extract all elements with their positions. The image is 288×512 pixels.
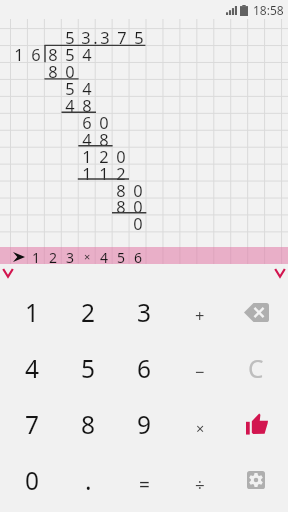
button[interactable]: 2 xyxy=(60,284,116,340)
staticText: . xyxy=(85,464,92,497)
button[interactable]: = xyxy=(116,452,172,508)
staticText: 3 xyxy=(66,248,75,265)
staticText: 1 xyxy=(82,145,92,167)
staticText: 7 xyxy=(117,26,127,48)
other: Backspace xyxy=(244,303,269,322)
staticText: 0 xyxy=(133,179,143,201)
staticText: ÷ xyxy=(195,473,205,496)
staticText: 8 xyxy=(99,128,109,150)
staticText: 5 xyxy=(65,77,75,99)
other: Collapse right xyxy=(274,269,286,278)
other: Cursor xyxy=(13,252,25,262)
button[interactable]: C xyxy=(228,340,284,396)
staticText: 1 xyxy=(99,162,109,184)
other: Settings xyxy=(247,471,265,489)
button[interactable]: Cursor xyxy=(0,247,288,264)
staticText: = xyxy=(139,472,150,498)
staticText: 8 xyxy=(48,43,58,65)
staticText: 18:58 xyxy=(253,2,284,18)
button[interactable]: Confirm xyxy=(228,396,284,452)
other: Collapse left xyxy=(2,269,14,278)
staticText: 2 xyxy=(99,145,109,167)
button[interactable]: × xyxy=(172,396,228,452)
staticText: 4 xyxy=(65,94,75,116)
button[interactable]: 9 xyxy=(116,396,172,452)
staticText: 8 xyxy=(116,179,126,201)
staticText: 4 xyxy=(100,248,109,265)
staticText: 0 xyxy=(99,111,109,133)
button[interactable]: 5 xyxy=(60,340,116,396)
staticText: 0 xyxy=(116,145,126,167)
staticText: 3 xyxy=(137,296,152,329)
staticText: − xyxy=(195,360,205,382)
button[interactable]: 4 xyxy=(4,340,60,396)
staticText: 4 xyxy=(82,43,92,65)
staticText: 3 xyxy=(81,26,91,48)
staticText: 8 xyxy=(82,94,92,116)
button[interactable]: 8 xyxy=(60,396,116,452)
staticText: 3 xyxy=(100,26,110,48)
staticText: C xyxy=(248,352,264,385)
staticText: 6 xyxy=(82,111,92,133)
staticText: 8 xyxy=(81,408,96,441)
staticText: × xyxy=(84,249,91,264)
staticText: 1 xyxy=(14,43,24,65)
button[interactable]: ÷ xyxy=(172,452,228,508)
staticText: 1 xyxy=(82,162,92,184)
staticText: × xyxy=(196,418,205,438)
other: Confirm xyxy=(246,413,268,435)
staticText: 5 xyxy=(65,43,75,65)
button[interactable]: 0 xyxy=(4,452,60,508)
staticText: 6 xyxy=(31,43,41,65)
button[interactable]: 7 xyxy=(4,396,60,452)
staticText: 5 xyxy=(81,352,96,385)
staticText: 0 xyxy=(133,195,143,217)
button[interactable]: 3 xyxy=(116,284,172,340)
button[interactable]: . xyxy=(60,452,116,508)
staticText: 6 xyxy=(137,352,152,385)
staticText: 1 xyxy=(32,248,41,265)
button[interactable]: Settings xyxy=(228,452,284,508)
button[interactable]: + xyxy=(172,284,228,340)
staticText: 2 xyxy=(49,248,58,265)
staticText: . xyxy=(93,26,98,48)
staticText: 8 xyxy=(48,60,58,82)
staticText: 4 xyxy=(82,128,92,150)
button[interactable]: Backspace xyxy=(228,284,284,340)
staticText: 5 xyxy=(134,26,144,48)
staticText: 1 xyxy=(25,296,40,329)
staticText: 5 xyxy=(65,26,75,48)
staticText: 4 xyxy=(25,352,40,385)
staticText: 2 xyxy=(81,296,96,329)
staticText: 5 xyxy=(117,248,126,265)
button[interactable]: 1 xyxy=(4,284,60,340)
staticText: + xyxy=(195,304,205,326)
button[interactable]: 6 xyxy=(116,340,172,396)
staticText: 0 xyxy=(133,212,143,234)
staticText: 9 xyxy=(137,408,152,441)
button[interactable]: − xyxy=(172,340,228,396)
staticText: 8 xyxy=(116,195,126,217)
staticText: 2 xyxy=(116,162,126,184)
staticText: 6 xyxy=(134,248,143,265)
staticText: 7 xyxy=(25,408,40,441)
staticText: 4 xyxy=(82,77,92,99)
staticText: 0 xyxy=(25,464,40,497)
staticText: 0 xyxy=(65,60,75,82)
